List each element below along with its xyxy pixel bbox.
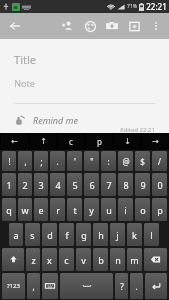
- staticText: c: [69, 136, 73, 147]
- button[interactable]: p: [86, 133, 112, 150]
- button[interactable]: @: [118, 151, 133, 171]
- button[interactable]: b: [93, 248, 108, 271]
- button[interactable]: q: [2, 198, 16, 221]
- button[interactable]: f: [59, 223, 74, 246]
- staticText: :: [107, 156, 110, 167]
- button[interactable]: More options: [145, 13, 167, 39]
- button[interactable]: $: [135, 151, 150, 171]
- button[interactable]: c: [59, 248, 74, 271]
- button[interactable]: a: [9, 223, 23, 246]
- button[interactable]: i: [118, 198, 133, 221]
- button[interactable]: t: [67, 198, 82, 221]
- button[interactable]: Add person: [57, 13, 79, 39]
- button[interactable]: .: [50, 151, 65, 171]
- staticText: →: [152, 137, 159, 146]
- staticText: @: [122, 156, 130, 167]
- button[interactable]: r: [50, 198, 65, 221]
- staticText: 4: [55, 179, 61, 191]
- staticText: 7: [106, 179, 112, 191]
- staticText: Title: [14, 52, 36, 67]
- button[interactable]: Colour: [79, 13, 101, 39]
- button[interactable]: n: [110, 248, 125, 271]
- staticText: k: [132, 229, 137, 241]
- button[interactable]: m: [127, 248, 142, 271]
- button[interactable]: Change keyboard: [42, 273, 58, 299]
- button[interactable]: :: [101, 151, 116, 171]
- button[interactable]: ?: [115, 273, 128, 299]
- staticText: 9: [140, 179, 146, 191]
- button[interactable]: Cursor down: [114, 133, 140, 150]
- button[interactable]: 8: [118, 173, 133, 196]
- button[interactable]: Camera: [101, 13, 123, 39]
- staticText: 1: [6, 179, 12, 191]
- button[interactable]: d: [42, 223, 57, 246]
- button[interactable]: z: [26, 248, 40, 271]
- staticText: t: [73, 204, 77, 216]
- button[interactable]: Cursor left: [1, 133, 28, 150]
- button[interactable]: s: [25, 223, 40, 246]
- staticText: s: [30, 229, 35, 241]
- button[interactable]: o: [135, 198, 150, 221]
- button[interactable]: 3: [34, 173, 48, 196]
- staticText: ?123: [7, 282, 20, 290]
- button[interactable]: v: [76, 248, 91, 271]
- button[interactable]: 7: [101, 173, 116, 196]
- button[interactable]: [60, 273, 113, 299]
- button[interactable]: c: [58, 133, 84, 150]
- staticText: y: [89, 204, 94, 216]
- button[interactable]: w: [18, 198, 32, 221]
- staticText: ↓: [124, 137, 131, 146]
- button[interactable]: ?123: [2, 273, 25, 299]
- button[interactable]: u: [101, 198, 116, 221]
- button[interactable]: l: [144, 223, 159, 246]
- button[interactable]: k: [127, 223, 142, 246]
- button[interactable]: Back: [6, 17, 24, 35]
- button[interactable]: Remind me: [14, 114, 78, 126]
- button[interactable]: Backspace: [144, 248, 167, 271]
- button[interactable]: 4: [50, 173, 65, 196]
- staticText: 6: [89, 179, 95, 191]
- button[interactable]: Cursor right: [142, 133, 168, 150]
- button[interactable]: 6: [84, 173, 99, 196]
- button[interactable]: !: [2, 151, 16, 171]
- staticText: f: [65, 229, 69, 241]
- button[interactable]: Shift: [2, 248, 24, 271]
- button[interactable]: g: [76, 223, 91, 246]
- button[interactable]: 0: [152, 173, 167, 196]
- staticText: /: [158, 156, 161, 167]
- staticText: h: [98, 229, 104, 241]
- staticText: 0: [157, 179, 163, 191]
- button[interactable]: x: [42, 248, 57, 271]
- button[interactable]: ,: [27, 273, 40, 299]
- button[interactable]: 2: [18, 173, 32, 196]
- button[interactable]: Enter: [145, 273, 167, 299]
- button[interactable]: 1: [2, 173, 16, 196]
- staticText: .: [56, 156, 59, 167]
- staticText: o: [140, 204, 146, 216]
- staticText: .: [135, 281, 138, 292]
- staticText: v: [81, 254, 86, 266]
- button[interactable]: j: [110, 223, 125, 246]
- button[interactable]: e: [34, 198, 48, 221]
- staticText: n: [115, 254, 121, 266]
- button[interactable]: 9: [135, 173, 150, 196]
- button[interactable]: Cursor up: [30, 133, 56, 150]
- button[interactable]: .: [130, 273, 143, 299]
- button[interactable]: ,: [18, 151, 32, 171]
- button[interactable]: /: [152, 151, 167, 171]
- staticText: ,: [24, 156, 27, 167]
- staticText: ": [90, 156, 94, 167]
- staticText: $: [140, 156, 145, 167]
- staticText: l: [150, 229, 153, 241]
- button[interactable]: ': [67, 151, 82, 171]
- staticText: j: [116, 229, 119, 241]
- staticText: r: [56, 204, 60, 216]
- button[interactable]: Add image: [123, 13, 145, 39]
- button[interactable]: h: [93, 223, 108, 246]
- staticText: ,: [32, 281, 35, 292]
- button[interactable]: 5: [67, 173, 82, 196]
- button[interactable]: ": [84, 151, 99, 171]
- button[interactable]: y: [84, 198, 99, 221]
- button[interactable]: ;: [34, 151, 48, 171]
- button[interactable]: p: [152, 198, 167, 221]
